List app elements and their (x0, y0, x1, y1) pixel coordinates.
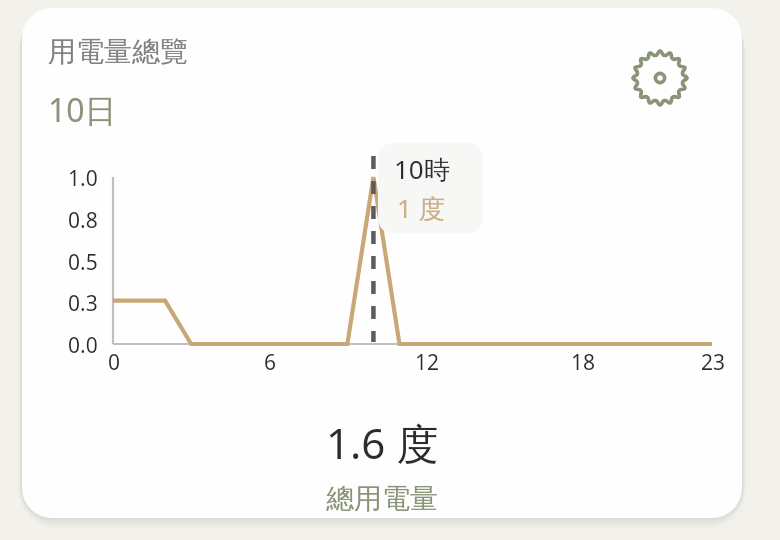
staticText: 0.8 (68, 206, 98, 235)
staticText: 用電量總覽 (48, 34, 188, 69)
staticText: 6 (264, 348, 277, 377)
staticText: 0.0 (68, 331, 98, 360)
staticText: 0.5 (68, 248, 98, 277)
button[interactable]: 10時 (378, 143, 482, 233)
staticText: 總用電量 (326, 481, 438, 516)
staticText: 12 (415, 348, 440, 377)
staticText: 18 (571, 348, 596, 377)
staticText: 1 度 (397, 190, 445, 226)
button[interactable]: 用電量總覽 (22, 8, 742, 518)
staticText: 10日 (48, 88, 117, 132)
staticText: 23 (701, 348, 726, 377)
staticText: 10時 (394, 151, 450, 187)
staticText: 1.6 度 (326, 414, 439, 471)
button[interactable]: Settings (626, 44, 694, 112)
staticText: 0 (108, 348, 121, 377)
staticText: 0.3 (68, 289, 98, 318)
staticText: 1.0 (68, 164, 98, 193)
